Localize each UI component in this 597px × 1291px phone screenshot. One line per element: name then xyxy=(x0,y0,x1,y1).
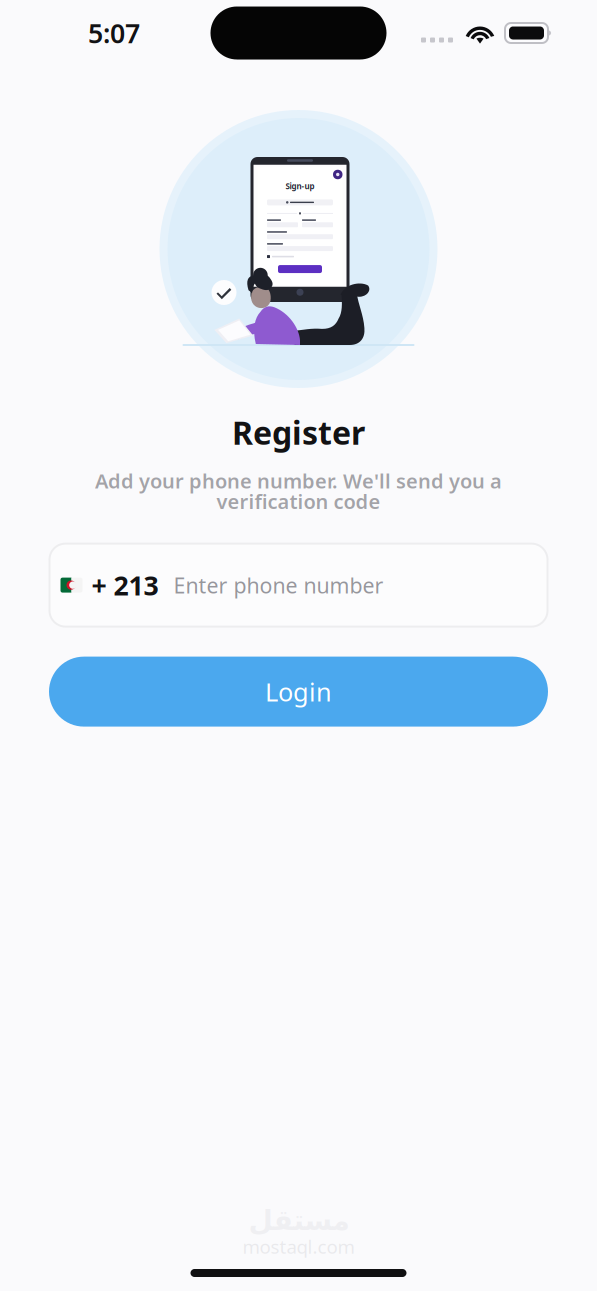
button[interactable]: Login xyxy=(49,657,548,727)
staticText: Register xyxy=(232,411,365,453)
staticText: + 213 xyxy=(91,567,158,603)
staticText: 5:07 xyxy=(88,15,140,51)
staticText: Login xyxy=(265,675,332,708)
staticText: mostaql.com xyxy=(242,1234,354,1259)
staticText: verification code xyxy=(216,488,380,515)
staticText: Enter phone number xyxy=(173,571,383,599)
staticText: Sign-up xyxy=(285,181,314,191)
staticText: Add your phone number. We'll send you a xyxy=(95,467,502,494)
staticText: مستقل xyxy=(248,1204,349,1236)
button[interactable]: + 213 xyxy=(49,544,547,627)
